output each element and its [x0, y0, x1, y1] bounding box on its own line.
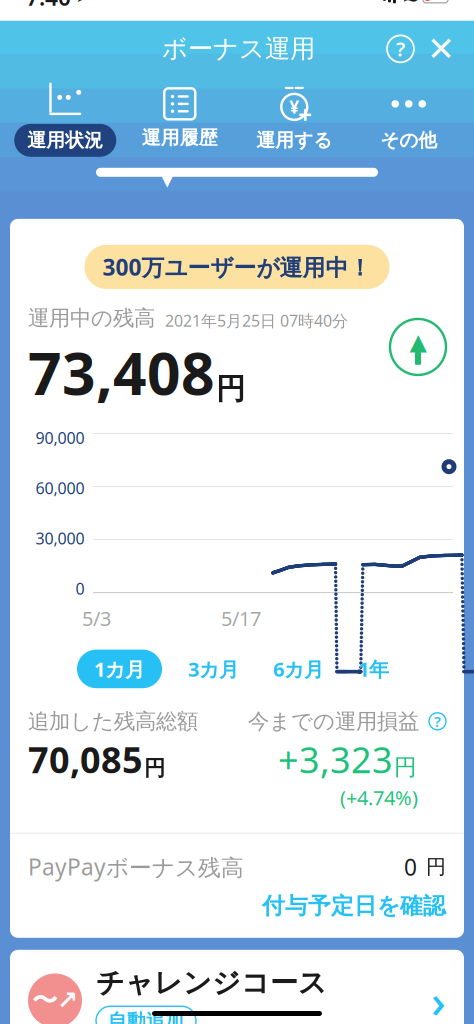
staticText: 60,000 — [35, 477, 84, 498]
staticText: 3カ月 — [188, 656, 239, 682]
staticText: 運用履歴 — [142, 126, 218, 149]
button[interactable]: 6カ月 — [265, 650, 332, 688]
button[interactable]: 〜↗ — [10, 950, 464, 1024]
button[interactable]: 1カ月 — [77, 650, 162, 688]
staticText: 円 — [144, 755, 165, 781]
staticText: 1カ月 — [94, 656, 145, 682]
staticText: +3,323 — [278, 735, 393, 783]
staticText: 0 — [404, 852, 417, 882]
staticText: 90,000 — [35, 427, 84, 448]
button[interactable]: 運用損益について — [429, 713, 446, 730]
staticText: 7:40 — [26, 0, 71, 12]
staticText: ▼ — [161, 172, 172, 189]
button[interactable]: 運用状況 — [8, 79, 122, 159]
staticText: 73,408 — [28, 333, 215, 411]
staticText: ✕ — [427, 30, 455, 68]
button[interactable]: その他 — [351, 84, 466, 154]
staticText: 5/17 — [221, 605, 261, 632]
staticText: 2021年5月25日 07時40分 — [165, 310, 348, 331]
button[interactable]: 3カ月 — [180, 650, 247, 688]
staticText: 円 — [394, 753, 417, 781]
staticText: 円 — [426, 855, 446, 879]
button[interactable]: ¥ — [237, 84, 351, 154]
staticText: ▲ — [409, 329, 426, 355]
staticText: 運用する — [256, 129, 332, 152]
staticText: 付与予定日を確認 — [262, 892, 446, 920]
button[interactable]: ヘルプ — [381, 29, 420, 68]
staticText: チャレンジコース — [96, 966, 327, 1000]
staticText: 運用状況 — [27, 129, 103, 152]
staticText: › — [431, 970, 446, 1024]
staticText: 70,085 — [28, 735, 143, 783]
staticText: 30,000 — [35, 528, 84, 549]
button[interactable]: 閉じる — [420, 32, 460, 66]
staticText: ≈ — [402, 0, 420, 9]
staticText: 6カ月 — [273, 656, 324, 682]
staticText: 300万ユーザーが運用中！ — [102, 252, 371, 282]
staticText: その他 — [380, 129, 437, 152]
staticText: 今までの運用損益 — [248, 708, 419, 734]
staticText: ? — [434, 712, 441, 731]
staticText: 1年 — [358, 656, 389, 682]
staticText: 5/3 — [82, 605, 111, 632]
staticText: 運用中の残高 — [28, 305, 155, 331]
staticText: 〜↗ — [32, 985, 78, 1016]
staticText: 0 — [75, 578, 84, 599]
staticText: ? — [396, 36, 405, 62]
staticText: 自動追加 — [108, 1009, 184, 1024]
button[interactable]: 運用履歴 — [122, 86, 237, 151]
staticText: 追加した残高総額 — [28, 708, 198, 734]
staticText: 円 — [216, 371, 245, 407]
button[interactable]: 1年 — [350, 650, 397, 688]
staticText: ¥ — [289, 95, 299, 118]
staticText: ➤ — [71, 0, 88, 5]
staticText: PayPayボーナス残高 — [28, 852, 244, 882]
staticText: (+4.74%) — [340, 784, 418, 811]
staticText: ボーナス運用 — [162, 33, 315, 64]
button[interactable]: PayPayボーナス残高 — [10, 834, 464, 938]
